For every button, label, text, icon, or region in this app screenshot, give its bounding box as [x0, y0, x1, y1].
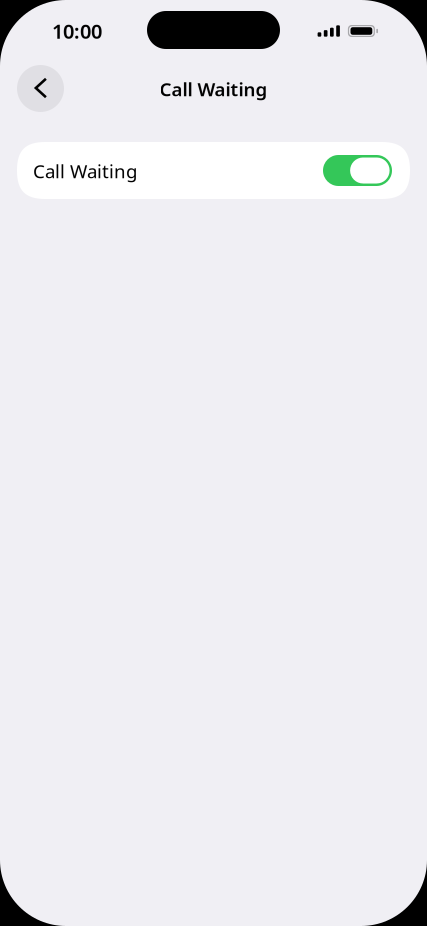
button[interactable]: Call Waiting [17, 142, 410, 199]
staticText: Call Waiting [159, 77, 267, 101]
staticText: Call Waiting [33, 159, 137, 183]
button[interactable]: Back [17, 61, 64, 108]
staticText: 10:00 [52, 18, 102, 44]
